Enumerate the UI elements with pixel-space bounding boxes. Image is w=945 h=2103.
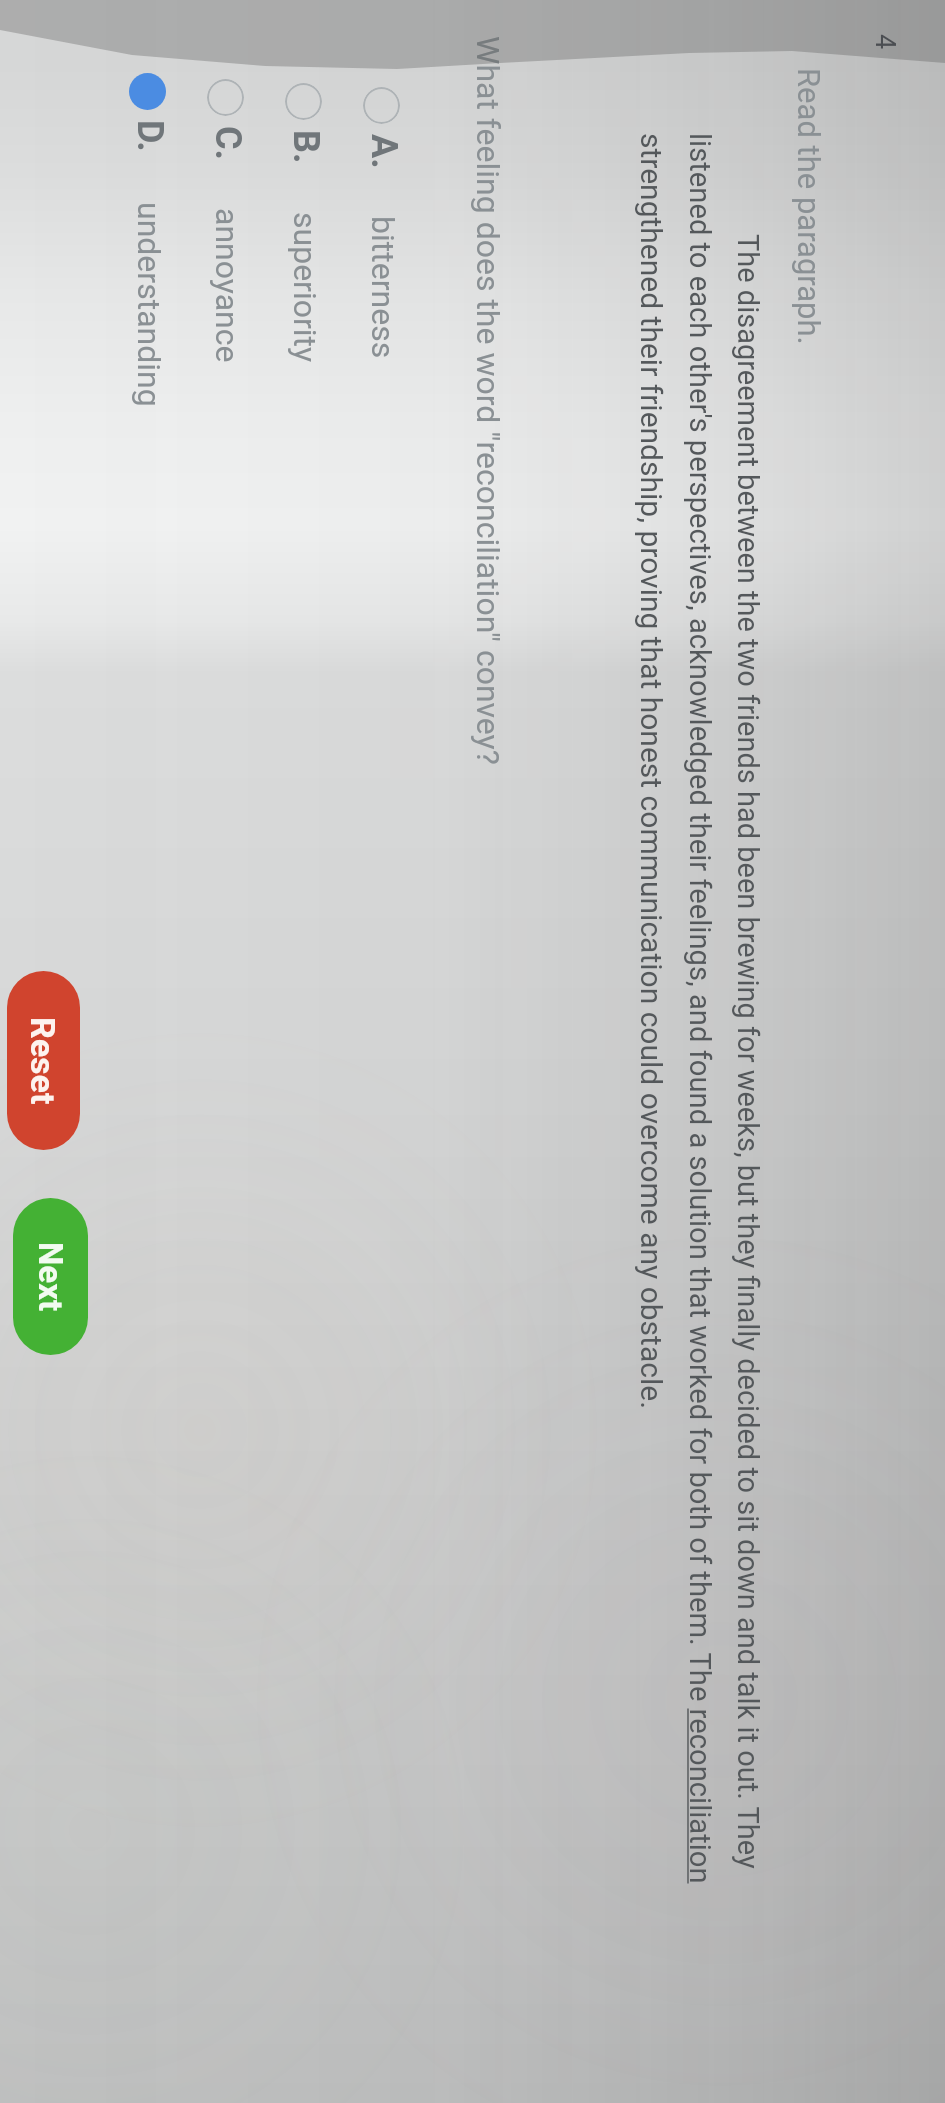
staticText: A. — [363, 134, 405, 169]
staticText: annoyance — [208, 208, 246, 363]
button[interactable]: B. — [264, 0, 342, 2103]
staticText: Next — [31, 1242, 70, 1312]
staticText: Reset — [23, 1017, 63, 1105]
button[interactable]: D. — [108, 0, 186, 2103]
staticText: What feeling does the word "reconciliati… — [469, 36, 507, 765]
staticText: B. — [285, 130, 327, 164]
staticText: 4 — [869, 34, 901, 50]
button[interactable]: A. — [342, 0, 420, 2103]
button[interactable]: Reset — [7, 971, 80, 1150]
staticText: C. — [207, 126, 249, 161]
staticText: listened to each other's perspectives, a… — [683, 133, 717, 1884]
staticText: D. — [129, 120, 171, 152]
staticText: The disagreement between the two friends… — [731, 234, 765, 1869]
staticText: Read the paragraph. — [791, 68, 827, 345]
staticText: bitterness — [364, 216, 402, 359]
button[interactable]: C. — [186, 0, 264, 2103]
staticText: superiority — [286, 212, 324, 363]
staticText: understanding — [130, 202, 168, 407]
staticText: strengthened their friendship, proving t… — [634, 133, 669, 1410]
button[interactable]: Next — [13, 1198, 88, 1355]
